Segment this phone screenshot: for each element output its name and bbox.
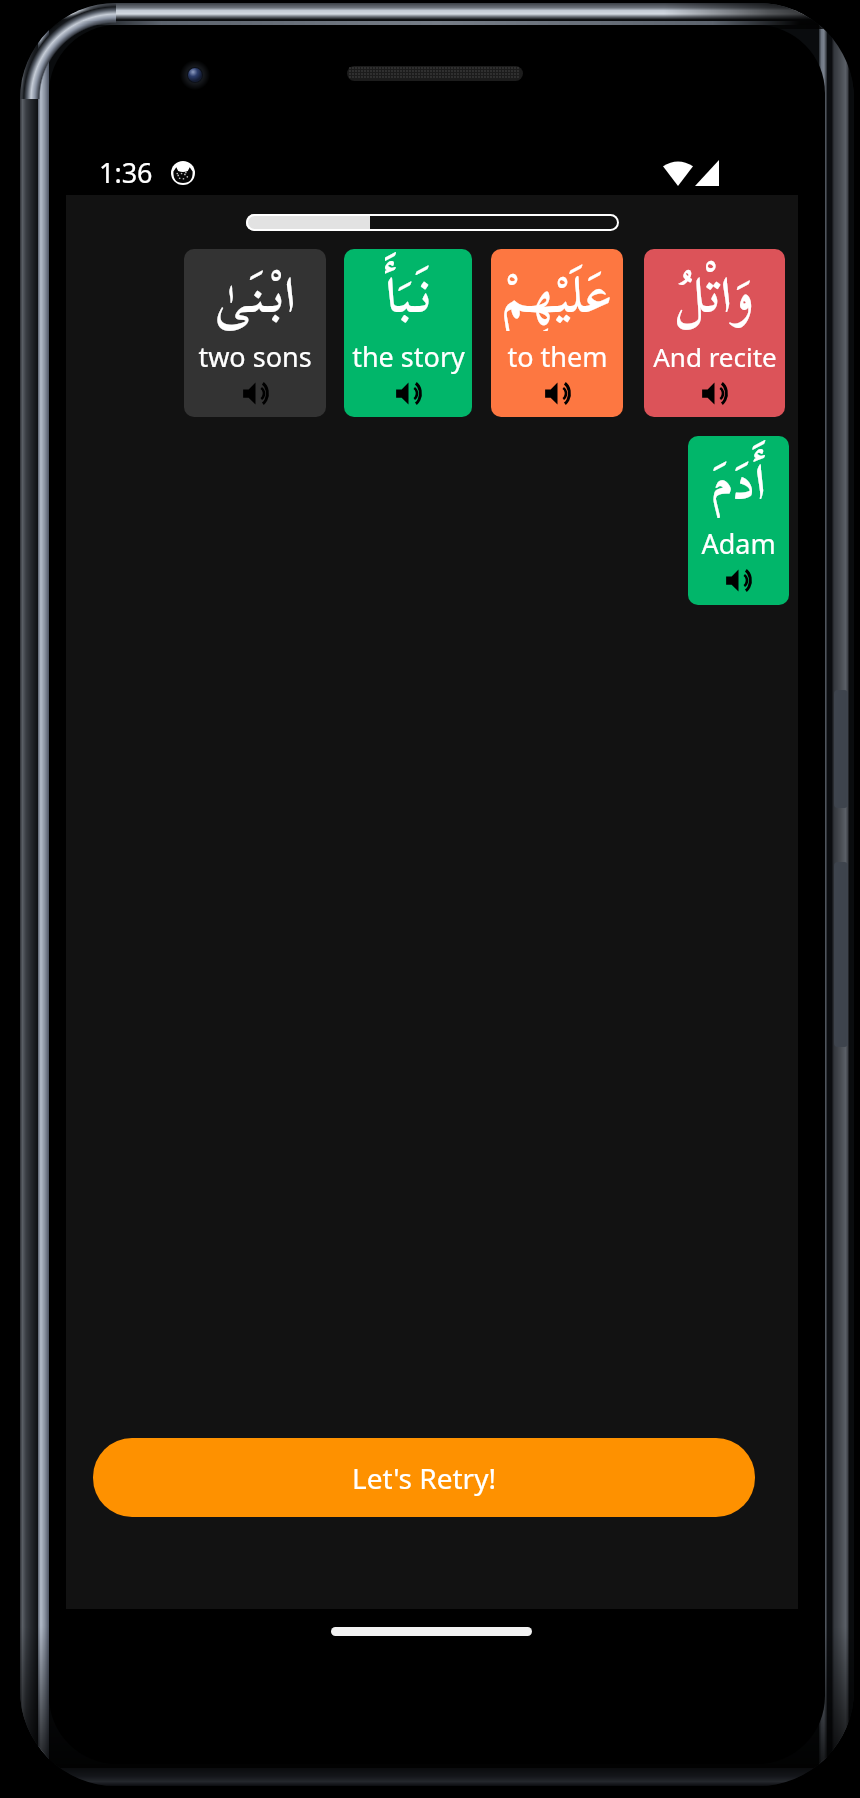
button[interactable]: ابْنَىٰ [184, 249, 326, 417]
staticText: Adam [701, 525, 776, 561]
staticText: عَلَيْهِمْ [502, 249, 612, 331]
staticText: نَبَأَ [385, 249, 432, 331]
button[interactable]: Let's Retry! [93, 1438, 755, 1517]
staticText: وَاتْلُ [676, 249, 753, 331]
staticText: ابْنَىٰ [214, 249, 296, 331]
button[interactable]: Play And recite [698, 377, 731, 410]
staticText: to them [507, 338, 608, 374]
button[interactable]: نَبَأَ [344, 249, 472, 417]
button[interactable]: Play two sons [239, 377, 272, 410]
other: Mobile signal [695, 160, 719, 186]
staticText: Let's Retry! [352, 1459, 496, 1497]
button[interactable]: Play the story [392, 377, 425, 410]
staticText: أَدَمَ [711, 436, 766, 518]
staticText: two sons [198, 338, 312, 374]
button[interactable]: أَدَمَ [688, 436, 789, 605]
button[interactable]: Play to them [541, 377, 574, 410]
staticText: the story [352, 338, 465, 374]
button[interactable]: Play Adam [722, 564, 755, 597]
staticText: And recite [653, 339, 777, 374]
staticText: 1:36 [99, 154, 153, 191]
button[interactable]: عَلَيْهِمْ [491, 249, 623, 417]
other: Wi-Fi [663, 160, 693, 186]
button[interactable]: وَاتْلُ [644, 249, 785, 417]
